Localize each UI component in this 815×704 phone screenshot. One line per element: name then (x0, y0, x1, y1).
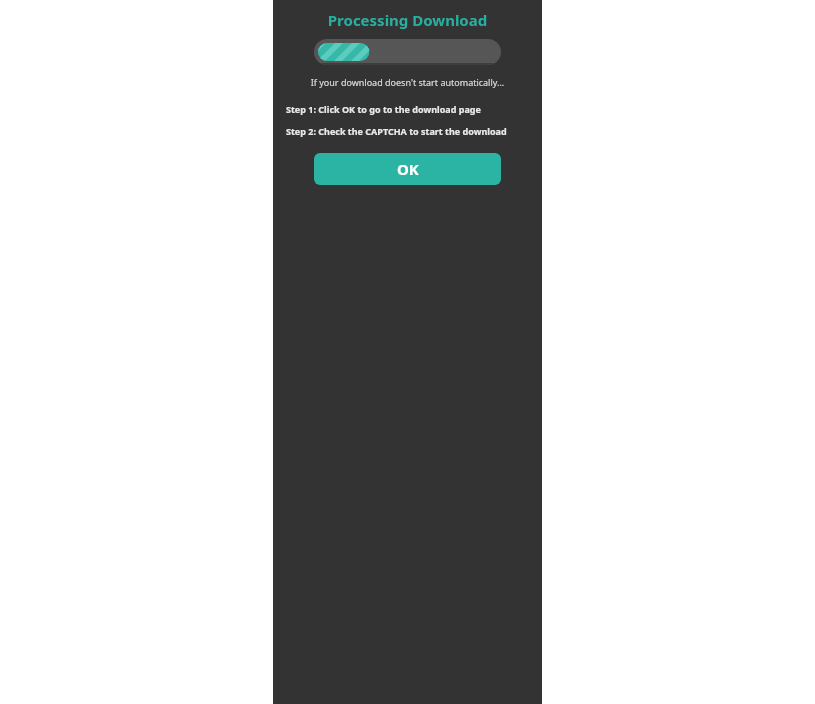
staticText: Processing Download (273, 10, 542, 30)
staticText: OK (397, 159, 419, 179)
button[interactable]: OK (314, 153, 501, 185)
staticText: Step 2: Check the CAPTCHA to start the d… (286, 125, 542, 137)
staticText: Step 1: Click OK to go to the download p… (286, 103, 542, 115)
staticText: If your download doesn't start automatic… (273, 76, 542, 88)
